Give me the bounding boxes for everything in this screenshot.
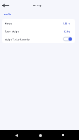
button[interactable]: Recent apps	[56, 130, 70, 140]
button[interactable]: Toggle weight tracker reminder	[63, 37, 72, 41]
button[interactable]: Toggle weight tracker reminder	[2, 35, 75, 43]
button[interactable]: Home	[33, 130, 47, 140]
button[interactable]	[2, 27, 75, 35]
button[interactable]: Back	[0, 0, 11, 11]
button[interactable]: Back	[9, 130, 23, 140]
button[interactable]	[2, 19, 75, 27]
